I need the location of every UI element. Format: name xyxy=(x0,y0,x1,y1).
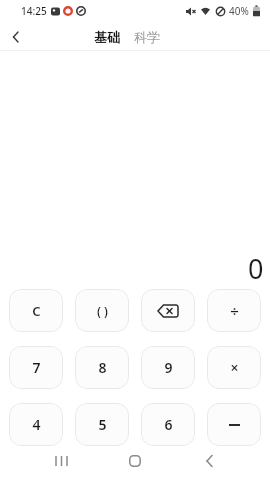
staticText: 6 xyxy=(164,415,173,434)
button[interactable]: C xyxy=(9,289,63,332)
button[interactable] xyxy=(207,403,261,446)
button[interactable] xyxy=(172,446,246,476)
button[interactable]: 基础 xyxy=(94,29,120,45)
button[interactable]: 8 xyxy=(75,346,129,389)
staticText: 14:25 xyxy=(21,4,47,18)
staticText: C xyxy=(32,302,41,320)
button[interactable]: 7 xyxy=(9,346,63,389)
staticText: ( ) xyxy=(97,303,108,319)
button[interactable]: 科学 xyxy=(134,29,160,45)
button[interactable]: 4 xyxy=(9,403,63,446)
button[interactable]: 9 xyxy=(141,346,195,389)
button[interactable]: × xyxy=(207,346,261,389)
staticText: ÷ xyxy=(230,301,239,321)
button[interactable] xyxy=(141,289,195,332)
staticText: 7 xyxy=(32,358,41,377)
button[interactable]: ( ) xyxy=(75,289,129,332)
button[interactable] xyxy=(98,446,172,476)
staticText: 8 xyxy=(98,358,107,377)
staticText: × xyxy=(230,358,239,377)
staticText: 40% xyxy=(229,4,249,18)
staticText: 科学 xyxy=(134,29,160,45)
staticText: 4 xyxy=(32,415,41,434)
staticText: 5 xyxy=(98,415,107,434)
staticText: 0 xyxy=(248,250,264,287)
button[interactable]: 5 xyxy=(75,403,129,446)
staticText: 基础 xyxy=(94,29,120,45)
button[interactable] xyxy=(24,446,98,476)
button[interactable]: ÷ xyxy=(207,289,261,332)
staticText: 9 xyxy=(164,358,173,377)
button[interactable] xyxy=(3,25,27,49)
button[interactable]: 6 xyxy=(141,403,195,446)
